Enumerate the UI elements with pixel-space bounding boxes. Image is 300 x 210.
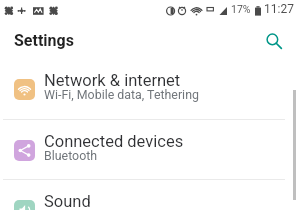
staticText: Bluetooth bbox=[44, 148, 98, 163]
staticText: Wi-Fi, Mobile data, Tethering bbox=[44, 87, 199, 102]
staticText: Connected devices bbox=[44, 132, 184, 151]
button[interactable]: Network & internet bbox=[0, 59, 300, 119]
staticText: 17% bbox=[231, 3, 251, 15]
button[interactable]: Connected devices bbox=[0, 120, 300, 180]
staticText: Sound bbox=[44, 192, 91, 210]
button[interactable]: Search bbox=[260, 27, 288, 55]
staticText: Settings bbox=[14, 31, 74, 50]
staticText: Network & internet bbox=[44, 71, 181, 90]
button[interactable]: Sound bbox=[0, 180, 300, 210]
staticText: 11:27 bbox=[264, 2, 294, 16]
